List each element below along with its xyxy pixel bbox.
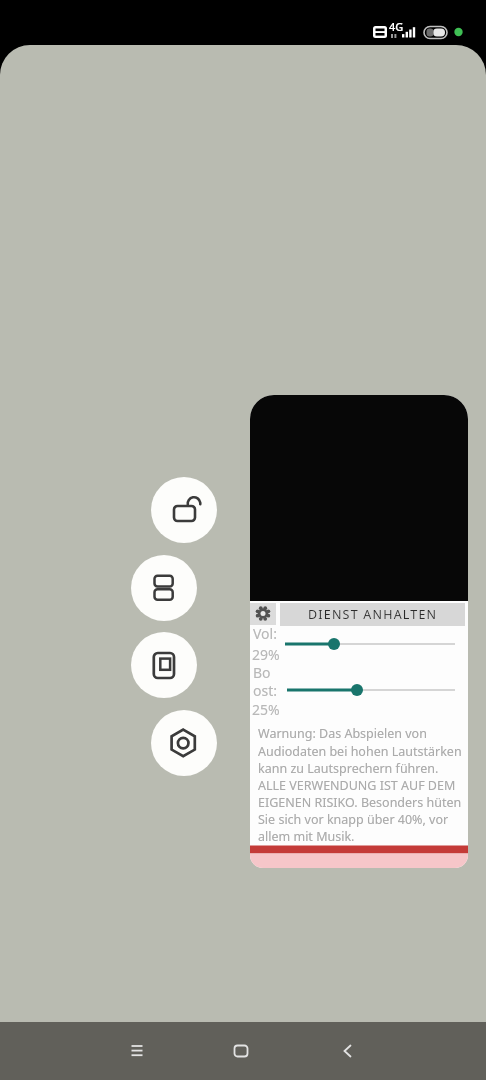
- staticText: Warnung: Das Abspielen von Audiodaten be…: [258, 725, 462, 844]
- button[interactable]: [324, 1022, 486, 1080]
- button[interactable]: [131, 555, 197, 621]
- button[interactable]: [131, 632, 197, 698]
- staticText: 29%: [252, 645, 280, 664]
- staticText: 4G: [389, 19, 404, 34]
- button[interactable]: [162, 1022, 324, 1080]
- staticText: DIENST ANHALTEN: [308, 606, 438, 623]
- button[interactable]: [250, 603, 276, 625]
- button[interactable]: DIENST ANHALTEN: [280, 603, 465, 626]
- staticText: 25%: [252, 700, 280, 719]
- staticText: ost:: [253, 681, 277, 700]
- staticText: Bo: [253, 663, 271, 682]
- staticText: Vol:: [253, 624, 277, 643]
- button[interactable]: [151, 710, 217, 776]
- button[interactable]: [151, 477, 217, 543]
- button[interactable]: [0, 1022, 162, 1080]
